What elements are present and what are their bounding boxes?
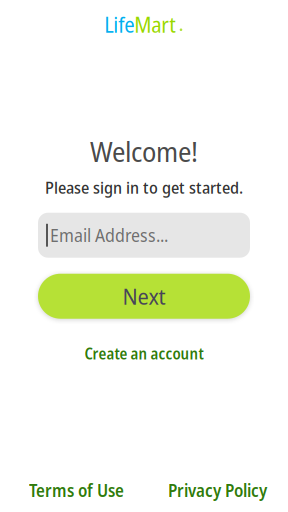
- staticText: Welcome!: [90, 132, 198, 170]
- button[interactable]: Privacy Policy: [168, 479, 267, 502]
- staticText: Terms of Use: [29, 479, 124, 502]
- staticText: Life: [104, 10, 134, 39]
- staticText: Next: [122, 281, 165, 311]
- staticText: Email Address...: [50, 223, 168, 247]
- staticText: Privacy Policy: [168, 479, 267, 502]
- staticText: Please sign in to get started.: [45, 176, 243, 199]
- staticText: Mart: [134, 10, 176, 39]
- button[interactable]: Email Address...: [38, 213, 250, 258]
- staticText: Create an account: [84, 343, 203, 364]
- button[interactable]: Create an account: [84, 343, 203, 364]
- button[interactable]: Next: [38, 274, 250, 319]
- button[interactable]: Terms of Use: [29, 479, 124, 502]
